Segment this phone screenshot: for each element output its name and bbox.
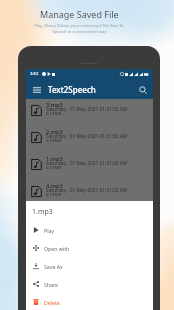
button[interactable]: 1.mp3 (26, 153, 153, 180)
staticText: Open with (44, 245, 70, 252)
staticText: Speech in a convenient way (52, 29, 107, 35)
button[interactable]: Menu (30, 83, 43, 96)
staticText: 2.mp3 (46, 128, 63, 136)
staticText: Play, Share,Delete your saved mp3 file T… (34, 23, 124, 29)
staticText: 2:52 (30, 71, 39, 77)
button[interactable]: Share (26, 275, 153, 293)
button[interactable]: 4.mp3 (26, 180, 153, 207)
button[interactable]: Play (26, 221, 153, 239)
staticText: Play (44, 227, 55, 234)
staticText: Saturday , 01 May 2021 01:31:02 AM (46, 106, 128, 113)
staticText: Delete (44, 299, 60, 306)
button[interactable]: 5.mp3 (26, 207, 153, 234)
staticText: 0.14MB (46, 137, 62, 143)
button[interactable]: Delete (26, 293, 153, 310)
staticText: 0.14MB (46, 191, 62, 197)
staticText: Share (44, 281, 58, 288)
staticText: Save As (44, 263, 63, 270)
staticText: 5.mp3 (46, 209, 63, 217)
staticText: Text2Speech (48, 84, 96, 95)
staticText: 4.mp3 (46, 182, 63, 190)
button[interactable]: Open with (26, 239, 153, 257)
button[interactable]: 2.mp3 (26, 126, 153, 153)
staticText: 0.14MB (46, 164, 62, 170)
staticText: 3.mp3 (46, 101, 63, 109)
staticText: 1.mp3 (32, 207, 53, 217)
staticText: 0.14MB (46, 110, 62, 116)
button[interactable]: Search (136, 83, 149, 96)
staticText: Manage Saved File (40, 8, 119, 20)
staticText: Saturday , 01 May 2021 01:31:02 AM (46, 160, 128, 167)
staticText: Saturday , 01 May 2021 01:31:02 AM (46, 133, 128, 140)
staticText: Saturday , 01 May 2021 01:31:02 AM (46, 187, 128, 194)
staticText: 1.mp3 (46, 155, 63, 163)
button[interactable]: Save As (26, 257, 153, 275)
button[interactable]: 3.mp3 (26, 99, 153, 126)
